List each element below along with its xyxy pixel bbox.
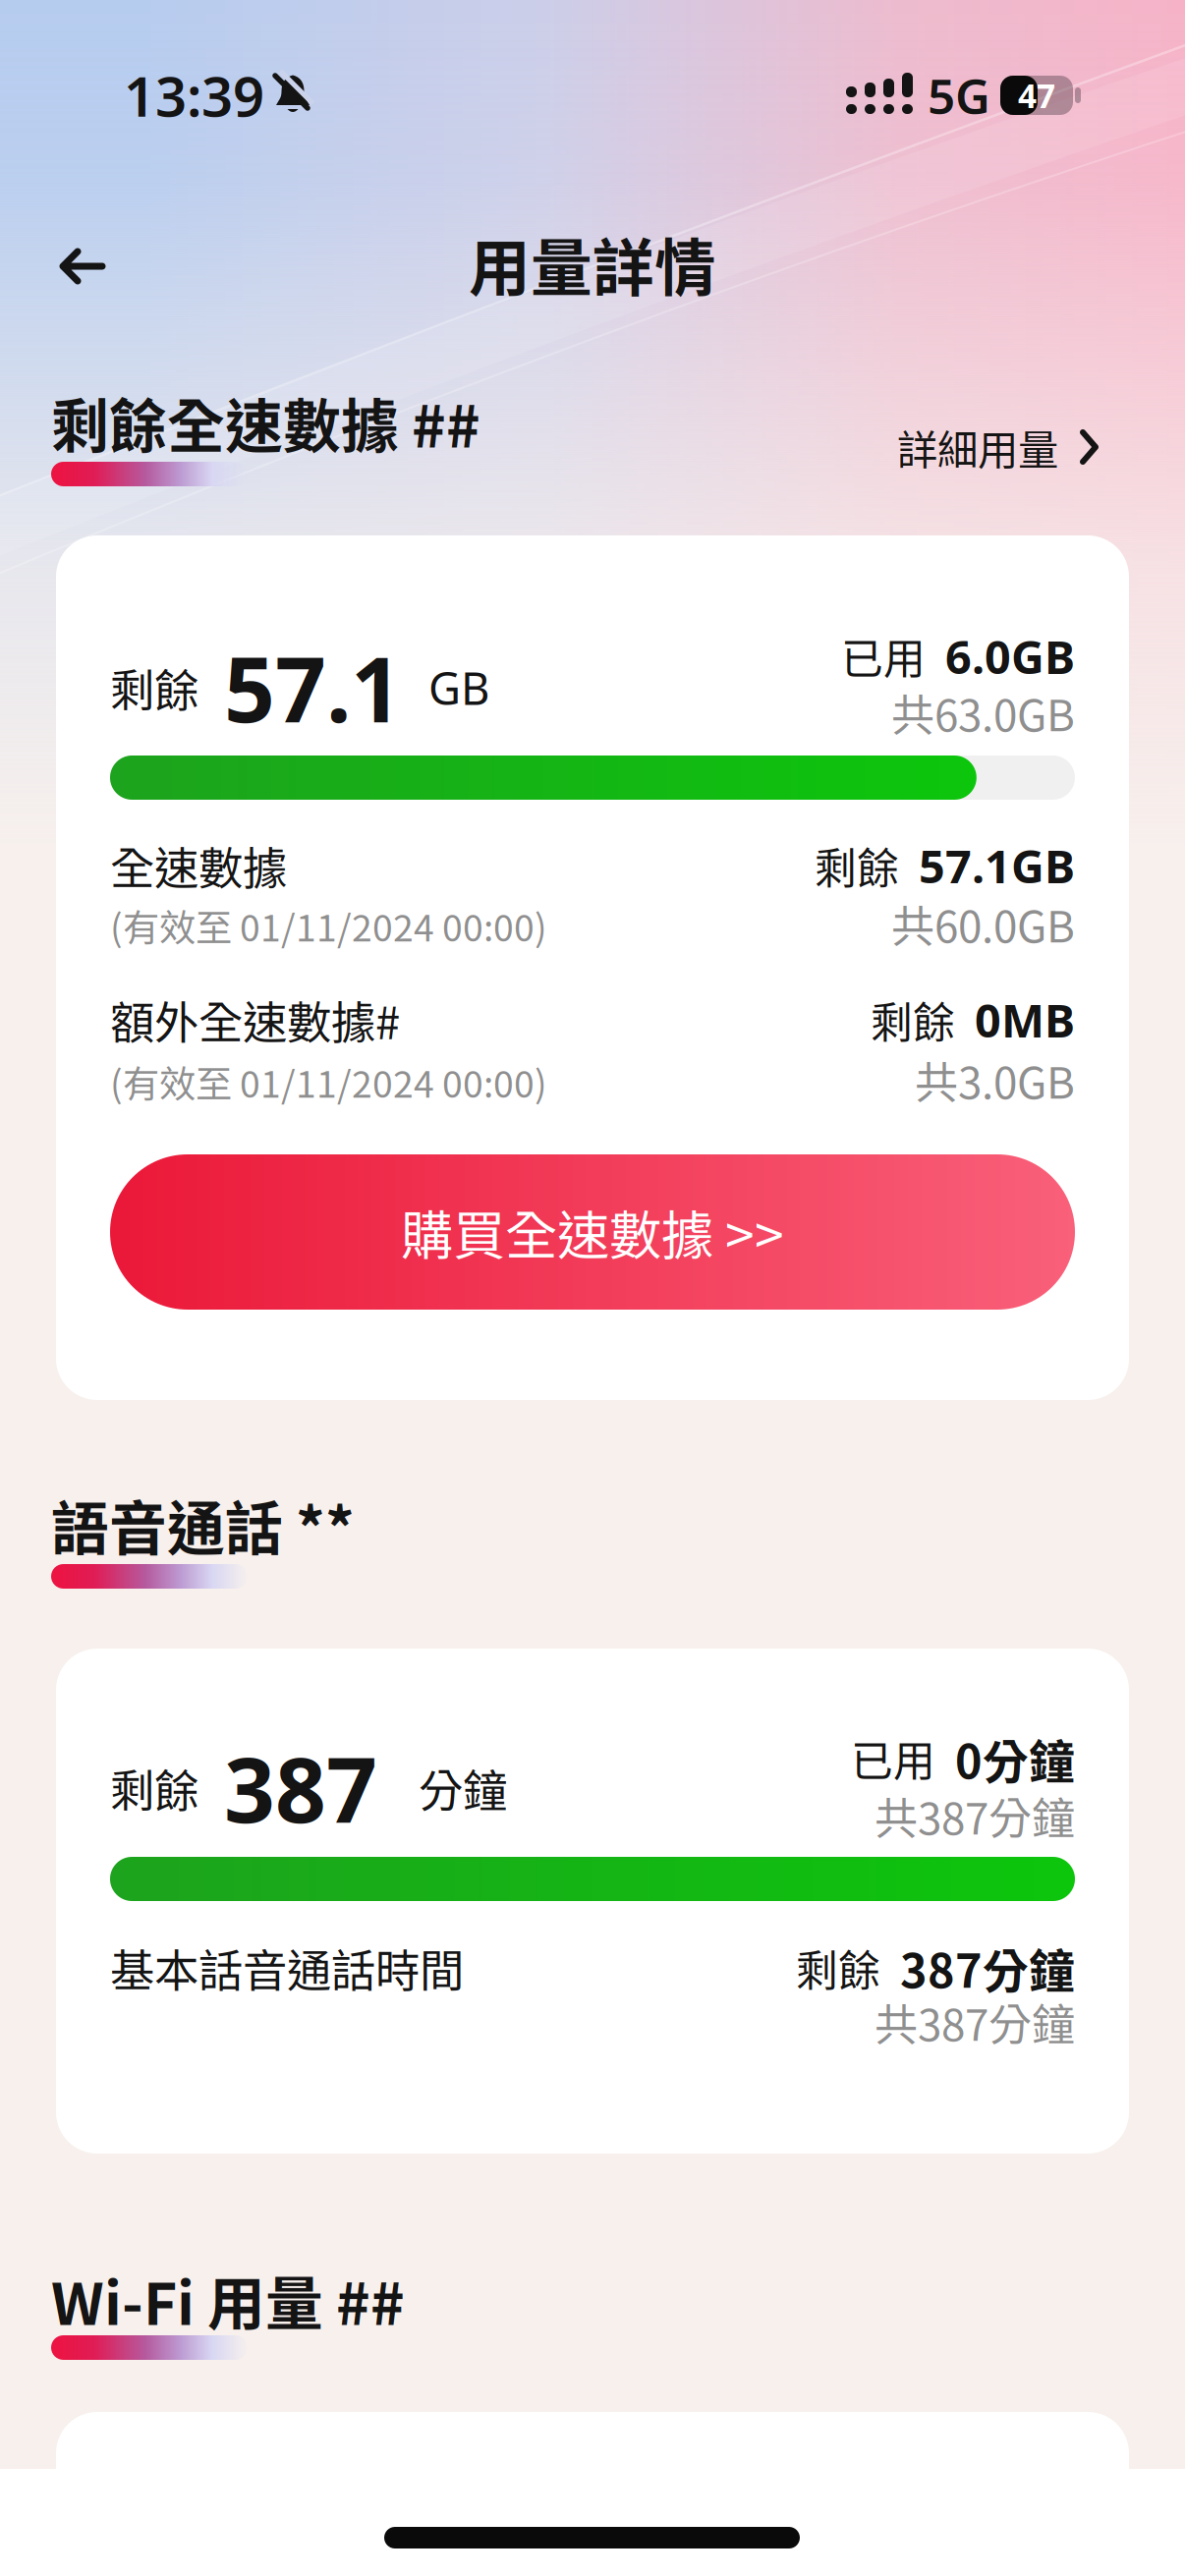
staticText: 57.1 [224, 629, 402, 747]
staticText: 47 [1018, 74, 1055, 117]
staticText: 剩餘 [871, 989, 955, 1050]
staticText: 額外全速數據# [110, 988, 400, 1052]
staticText: 剩餘 [815, 835, 899, 896]
staticText: 剩餘全速數據 ## [51, 381, 480, 464]
staticText: 共63.0GB [891, 681, 1075, 744]
button[interactable]: 詳細用量 [897, 418, 1099, 476]
staticText: 13:39 [124, 59, 264, 132]
staticText: GB [428, 658, 489, 717]
staticText: 剩餘 [110, 1756, 198, 1820]
staticText: Wi-Fi 用量 ## [51, 2258, 405, 2342]
staticText: 全速數據 [110, 833, 287, 898]
staticText: 共60.0GB [891, 892, 1075, 955]
staticText: 387分鐘 [900, 1935, 1075, 2001]
staticText: (有效至 01/11/2024 00:00) [110, 899, 547, 952]
staticText: 0分鐘 [955, 1725, 1075, 1792]
staticText: 已用 [841, 626, 926, 687]
staticText: 6.0GB [945, 626, 1075, 687]
button[interactable]: 返回 [59, 248, 106, 285]
staticText: 剩餘 [110, 655, 198, 720]
staticText: 剩餘 [796, 1938, 880, 1998]
staticText: 購買全速數據 >> [401, 1194, 784, 1270]
button[interactable]: 購買全速數據 >> [110, 1154, 1075, 1310]
staticText: 5G [928, 63, 990, 127]
staticText: (有效至 01/11/2024 00:00) [110, 1055, 547, 1108]
staticText: 語音通話 ** [51, 1483, 355, 1567]
staticText: 0MB [975, 989, 1075, 1050]
staticText: 387 [224, 1729, 377, 1847]
staticText: 共387分鐘 [875, 1991, 1075, 2053]
staticText: 用量詳情 [469, 219, 716, 308]
staticText: 共387分鐘 [875, 1784, 1075, 1847]
staticText: 已用 [851, 1728, 935, 1789]
staticText: 基本話音通話時間 [110, 1936, 464, 2000]
staticText: 分鐘 [419, 1756, 507, 1820]
staticText: 57.1GB [919, 835, 1075, 896]
staticText: 共3.0GB [915, 1048, 1075, 1111]
staticText: 詳細用量 [897, 418, 1058, 476]
